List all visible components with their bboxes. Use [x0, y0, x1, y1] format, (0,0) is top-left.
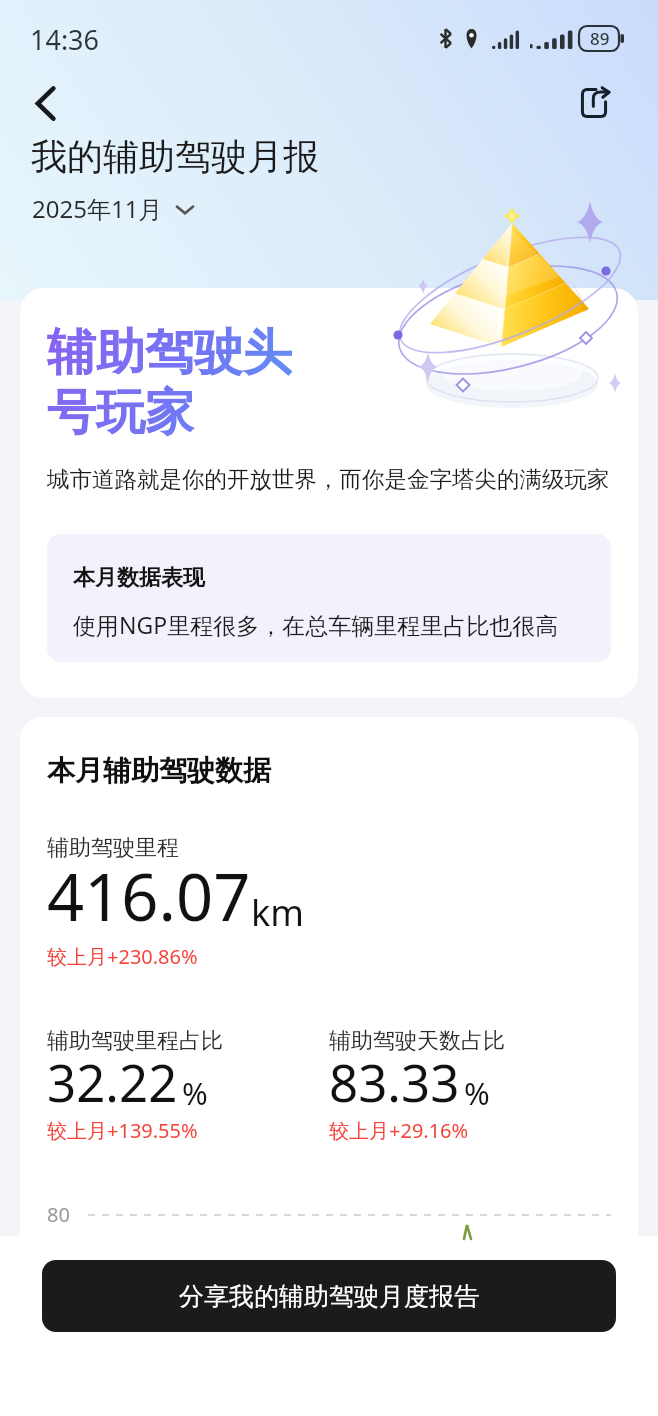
staticText: 83.33 [329, 1047, 460, 1116]
staticText: 80 [47, 1201, 70, 1228]
staticText: 辅助驾驶里程占比 [47, 1027, 223, 1055]
staticText: 我的辅助驾驶月报 [31, 134, 319, 179]
staticText: 城市道路就是你的开放世界，而你是金字塔尖的满级玩家 [47, 465, 610, 493]
button[interactable]: Share [570, 79, 618, 127]
button[interactable]: Back [20, 78, 70, 128]
staticText: 较上月+139.55% [47, 1117, 198, 1144]
staticText: 较上月+230.86% [47, 943, 198, 970]
staticText: 分享我的辅助驾驶月度报告 [179, 1281, 479, 1312]
staticText: 89 [590, 27, 610, 50]
staticText: 2025年11月 [32, 192, 163, 225]
button[interactable]: 分享我的辅助驾驶月度报告 [42, 1260, 616, 1332]
staticText: 辅助驾驶天数占比 [329, 1027, 505, 1055]
button[interactable]: 2025年11月 [32, 192, 197, 225]
staticText: 14:36 [30, 21, 100, 58]
staticText: 使用NGP里程很多，在总车辆里程里占比也很高 [73, 609, 559, 640]
staticText: 32.22 [47, 1047, 178, 1116]
staticText: 辅助驾驶头 号玩家 [47, 322, 293, 443]
staticText: 本月数据表现 [73, 564, 205, 592]
staticText: % [464, 1072, 490, 1114]
staticText: 416.07 [47, 852, 251, 941]
staticText: km [251, 888, 304, 937]
staticText: 本月辅助驾驶数据 [47, 753, 271, 788]
staticText: 较上月+29.16% [329, 1117, 469, 1144]
staticText: 辅助驾驶里程 [47, 834, 179, 862]
staticText: % [182, 1072, 208, 1114]
